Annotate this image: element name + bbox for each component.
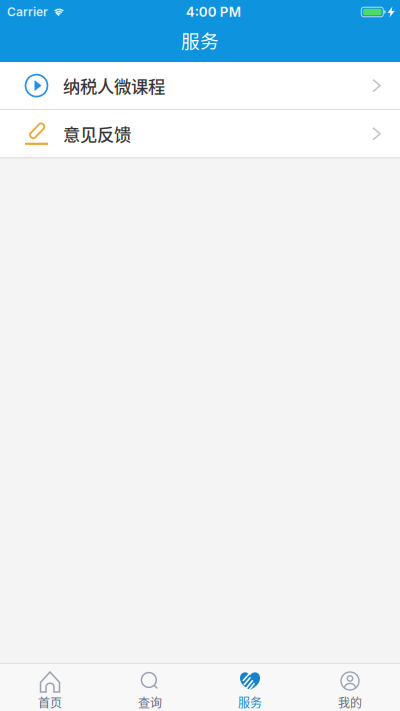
staticText: 首页 [38,694,62,711]
button[interactable]: 我的 [300,664,400,711]
staticText: 查询 [138,694,162,711]
button[interactable]: 首页 [0,664,100,711]
staticText: 我的 [338,694,362,711]
button[interactable]: 纳税人微课程 [0,62,400,110]
button[interactable]: 服务 [200,664,300,711]
staticText: 4:00 PM [186,4,241,20]
staticText: 服务 [181,26,219,53]
staticText: Carrier [7,5,48,19]
staticText: 纳税人微课程 [63,73,165,98]
button[interactable]: 意见反馈 [0,110,400,158]
staticText: 意见反馈 [63,121,131,146]
staticText: 服务 [238,694,262,711]
button[interactable]: 查询 [100,664,200,711]
